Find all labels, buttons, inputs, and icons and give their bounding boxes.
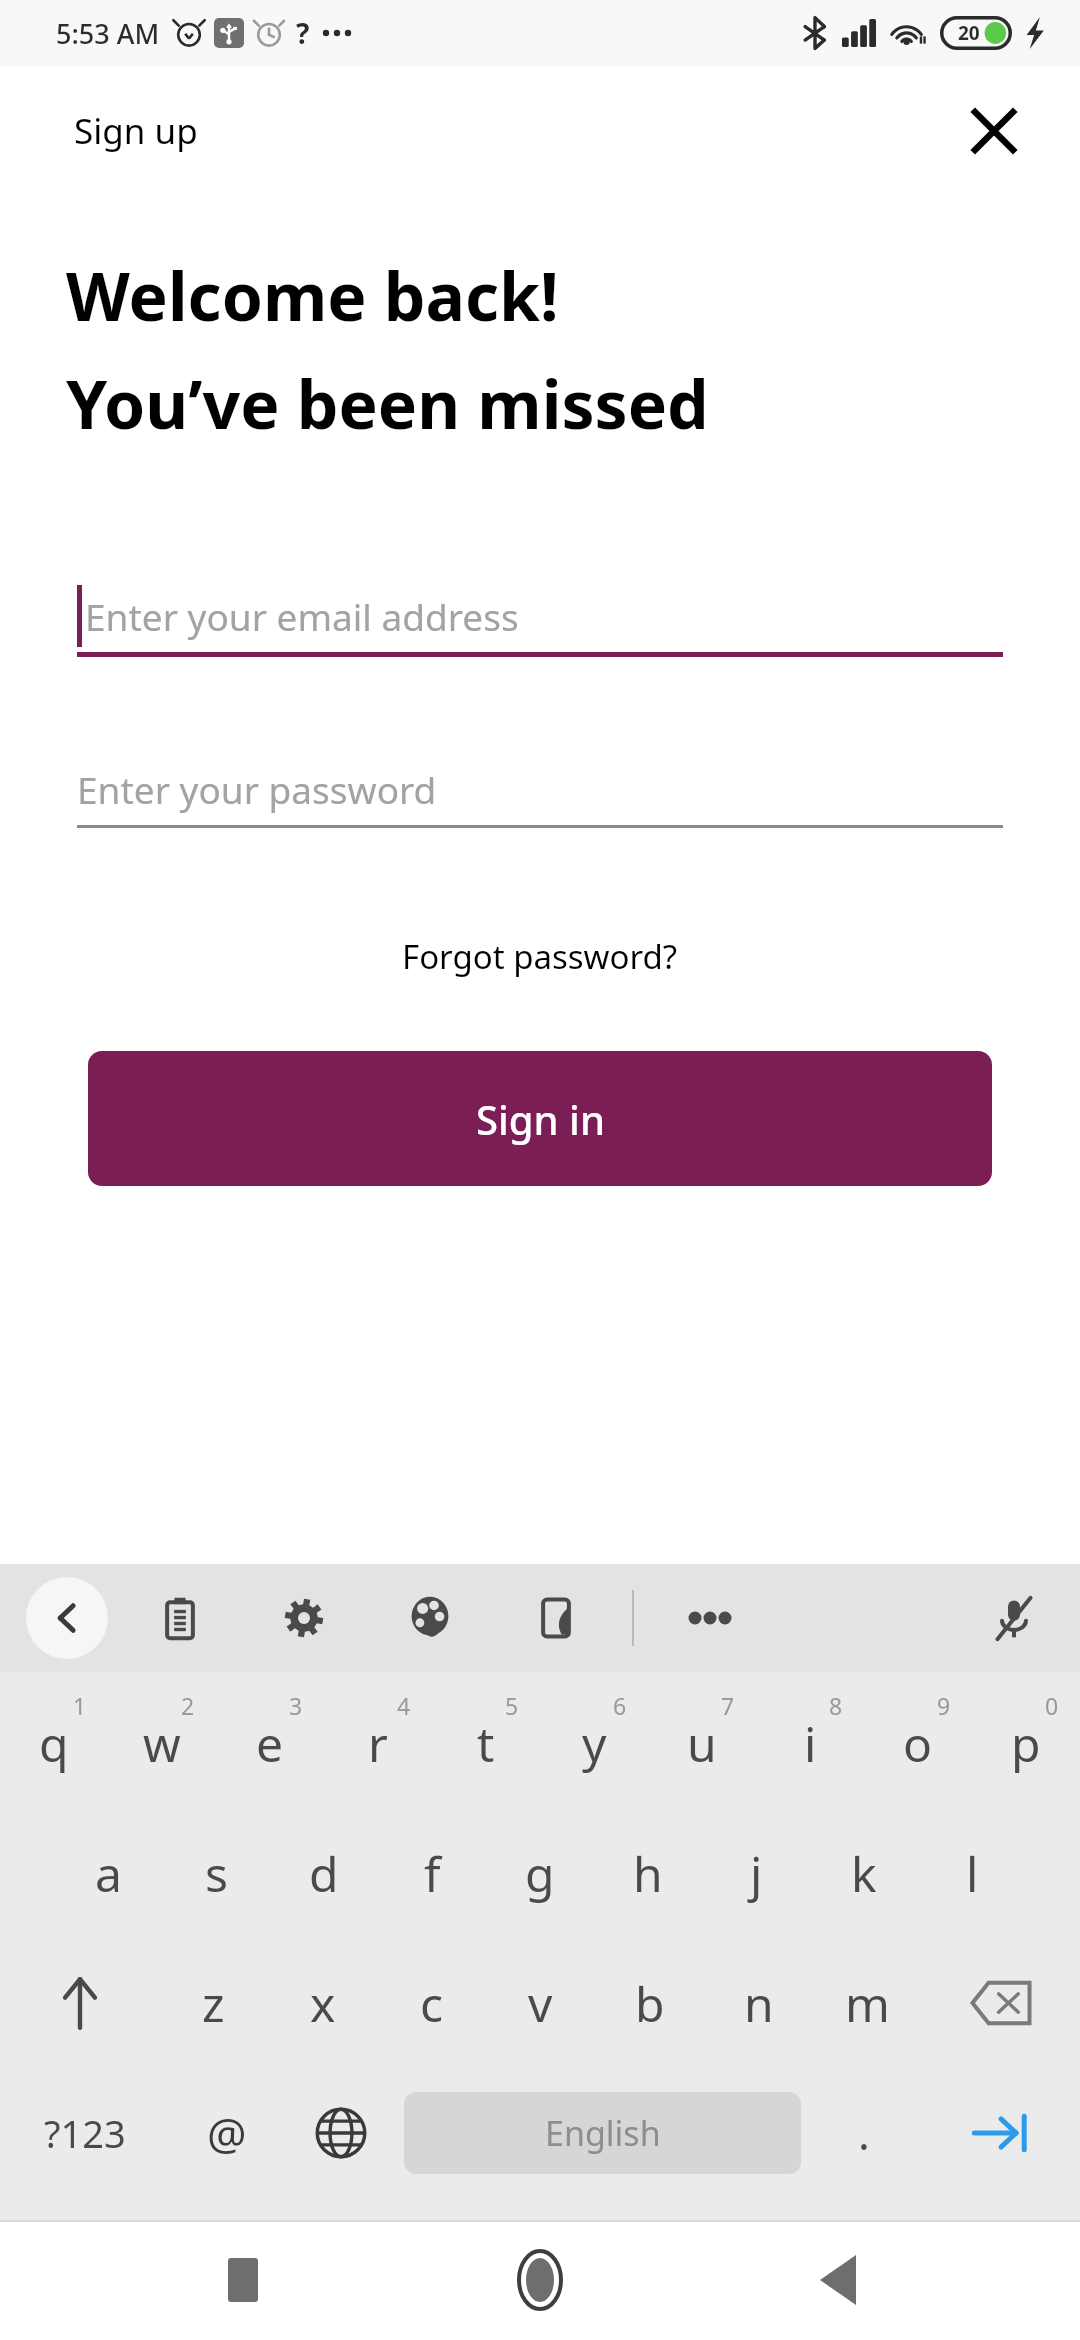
button[interactable]: m [813, 1938, 922, 2068]
button[interactable]: Enter your email address [77, 580, 1003, 657]
staticText: r [368, 1711, 388, 1776]
staticText: 3 [289, 1690, 303, 1721]
button[interactable]: Change language [284, 2068, 398, 2198]
staticText: 20 [958, 20, 980, 46]
staticText: e [256, 1711, 284, 1776]
button[interactable]: b [595, 1938, 704, 2068]
staticText: 6 [613, 1690, 627, 1721]
button[interactable]: g [486, 1808, 594, 1938]
staticText: 0 [1045, 1690, 1059, 1721]
staticText: 5 [505, 1690, 519, 1721]
button[interactable]: Back [783, 2225, 893, 2335]
staticText: q [39, 1711, 69, 1776]
staticText: Sign up [74, 107, 198, 155]
staticText: Welcome back! [66, 250, 559, 340]
button[interactable]: ?123 [0, 2068, 170, 2198]
staticText: c [420, 1971, 444, 2036]
staticText: a [95, 1841, 122, 1906]
staticText: h [633, 1841, 663, 1906]
button[interactable]: d [270, 1808, 378, 1938]
button[interactable]: p [972, 1678, 1080, 1808]
button[interactable]: Enter your password [77, 753, 1003, 828]
staticText: 8 [829, 1690, 843, 1721]
button[interactable]: More [678, 1586, 742, 1650]
staticText: p [1011, 1711, 1041, 1776]
staticText: y [582, 1711, 607, 1776]
staticText: x [310, 1971, 336, 2036]
button[interactable]: a [54, 1808, 162, 1938]
staticText: 5:53 AM [56, 15, 160, 52]
button[interactable]: r [324, 1678, 432, 1808]
staticText: Enter your email address [85, 591, 519, 641]
staticText: j [750, 1841, 763, 1906]
button[interactable]: h [594, 1808, 702, 1938]
staticText: i [804, 1711, 817, 1776]
button[interactable]: f [378, 1808, 486, 1938]
staticText: v [528, 1971, 553, 2036]
button[interactable]: Back [26, 1577, 108, 1659]
staticText: t [477, 1711, 495, 1776]
staticText: 4 [397, 1690, 411, 1721]
button[interactable]: j [702, 1808, 810, 1938]
button[interactable]: Recents [188, 2225, 298, 2335]
staticText: Forgot password? [402, 934, 678, 979]
staticText: Sign in [476, 1092, 605, 1146]
button[interactable]: e [216, 1678, 324, 1808]
button[interactable]: t [432, 1678, 540, 1808]
button[interactable]: Close [960, 97, 1028, 165]
button[interactable]: k [810, 1808, 918, 1938]
staticText: 1 [73, 1690, 87, 1721]
button[interactable]: u [648, 1678, 756, 1808]
button[interactable]: o [864, 1678, 972, 1808]
button[interactable]: Sign up [66, 97, 206, 165]
button[interactable]: q [0, 1678, 108, 1808]
button[interactable]: l [918, 1808, 1026, 1938]
staticText: g [525, 1841, 555, 1906]
button[interactable]: Handwriting [524, 1586, 588, 1650]
button[interactable]: c [377, 1938, 486, 2068]
staticText: ? [296, 14, 310, 52]
staticText: Enter your password [77, 764, 437, 814]
button[interactable]: v [486, 1938, 595, 2068]
button[interactable]: i [756, 1678, 864, 1808]
staticText: You’ve been missed [66, 358, 709, 448]
staticText: n [744, 1971, 774, 2036]
staticText: 7 [721, 1690, 735, 1721]
staticText: 2 [181, 1690, 195, 1721]
staticText: z [202, 1971, 225, 2036]
staticText: k [851, 1841, 877, 1906]
staticText: English [545, 2110, 661, 2156]
button[interactable]: z [159, 1938, 268, 2068]
staticText: s [205, 1841, 228, 1906]
staticText: u [687, 1711, 717, 1776]
button[interactable]: Sign in [88, 1051, 992, 1186]
button[interactable]: Settings [272, 1586, 336, 1650]
button[interactable]: @ [170, 2068, 284, 2198]
staticText: o [903, 1711, 933, 1776]
button[interactable]: . [807, 2068, 921, 2198]
button[interactable]: Home [485, 2225, 595, 2335]
button[interactable]: Backspace [922, 1938, 1080, 2068]
button[interactable]: Shift [0, 1938, 159, 2068]
button[interactable]: y [540, 1678, 648, 1808]
button[interactable]: Clipboard [148, 1586, 212, 1650]
staticText: @ [207, 2103, 247, 2163]
staticText: . [858, 2103, 870, 2163]
button[interactable]: n [704, 1938, 813, 2068]
staticText: b [635, 1971, 665, 2036]
button[interactable]: s [162, 1808, 270, 1938]
staticText: d [309, 1841, 339, 1906]
staticText: m [845, 1971, 890, 2036]
button[interactable]: Voice input off [982, 1586, 1046, 1650]
button[interactable]: Forgot password? [386, 926, 694, 987]
staticText: w [143, 1711, 181, 1776]
button[interactable]: Theme [398, 1586, 462, 1650]
staticText: 9 [937, 1690, 951, 1721]
button[interactable]: w [108, 1678, 216, 1808]
staticText: f [424, 1841, 441, 1906]
button[interactable]: Next [921, 2068, 1080, 2198]
button[interactable]: English [404, 2092, 801, 2174]
staticText: l [966, 1841, 979, 1906]
button[interactable]: x [268, 1938, 377, 2068]
staticText: ?123 [44, 2107, 126, 2159]
